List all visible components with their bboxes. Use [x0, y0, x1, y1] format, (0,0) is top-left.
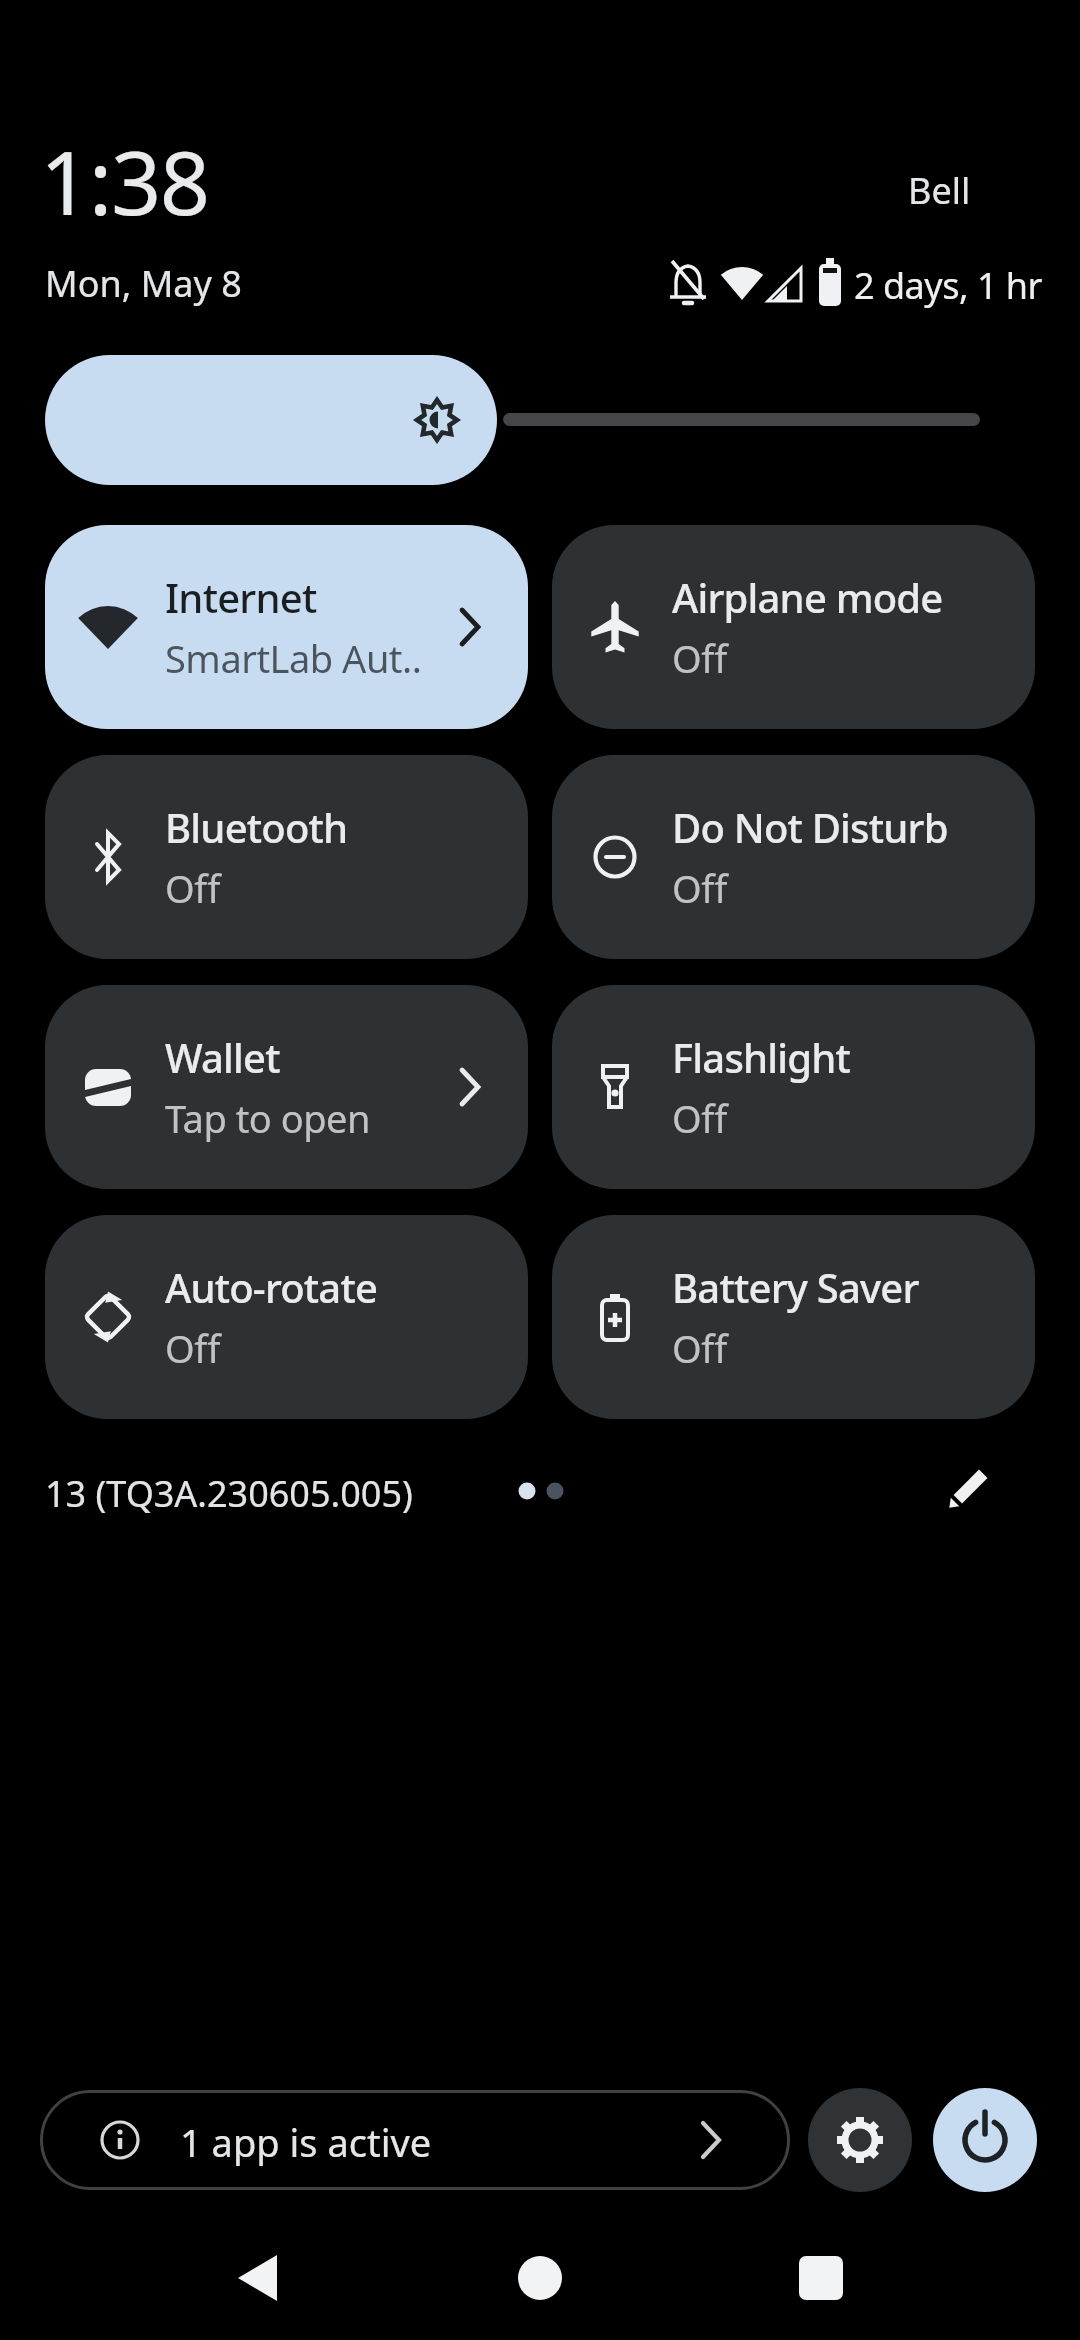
button[interactable]: Bluetooth — [45, 755, 528, 959]
staticText: Off — [672, 632, 727, 684]
button[interactable] — [215, 2236, 299, 2320]
staticText: Off — [672, 1322, 727, 1374]
button[interactable] — [498, 2236, 582, 2320]
staticText: 13 (TQ3A.230605.005) — [45, 1469, 413, 1518]
button[interactable]: 1 app is active — [40, 2090, 790, 2190]
staticText: Bell — [908, 166, 971, 215]
staticText: Mon, May 8 — [45, 259, 242, 308]
staticText: Off — [672, 1092, 727, 1144]
button[interactable]: Battery Saver — [552, 1215, 1035, 1419]
staticText: Airplane mode — [672, 570, 943, 624]
button[interactable]: Airplane mode — [552, 525, 1035, 729]
staticText: Do Not Disturb — [672, 800, 948, 854]
button[interactable] — [942, 1465, 992, 1515]
button[interactable]: Wallet — [45, 985, 528, 1189]
button[interactable] — [779, 2236, 863, 2320]
staticText: Off — [672, 862, 727, 914]
staticText: Flashlight — [672, 1030, 851, 1084]
button[interactable]: Flashlight — [552, 985, 1035, 1189]
staticText: Internet — [165, 570, 317, 624]
button[interactable] — [933, 2088, 1037, 2192]
staticText: 1:38 — [40, 121, 209, 241]
button[interactable]: Auto-rotate — [45, 1215, 528, 1419]
staticText: Off — [165, 862, 220, 914]
staticText: Auto-rotate — [165, 1260, 378, 1314]
staticText: 2 days, 1 hr — [854, 261, 1042, 310]
staticText: Battery Saver — [672, 1260, 919, 1314]
button[interactable] — [808, 2088, 912, 2192]
staticText: 1 app is active — [180, 2116, 432, 2168]
staticText: SmartLab Aut.. — [165, 632, 422, 684]
staticText: Wallet — [165, 1030, 280, 1084]
staticText: Tap to open — [165, 1092, 371, 1144]
staticText: Bluetooth — [165, 800, 348, 854]
button[interactable]: Internet — [45, 525, 528, 729]
staticText: Off — [165, 1322, 220, 1374]
button[interactable] — [45, 355, 497, 485]
button[interactable]: Do Not Disturb — [552, 755, 1035, 959]
